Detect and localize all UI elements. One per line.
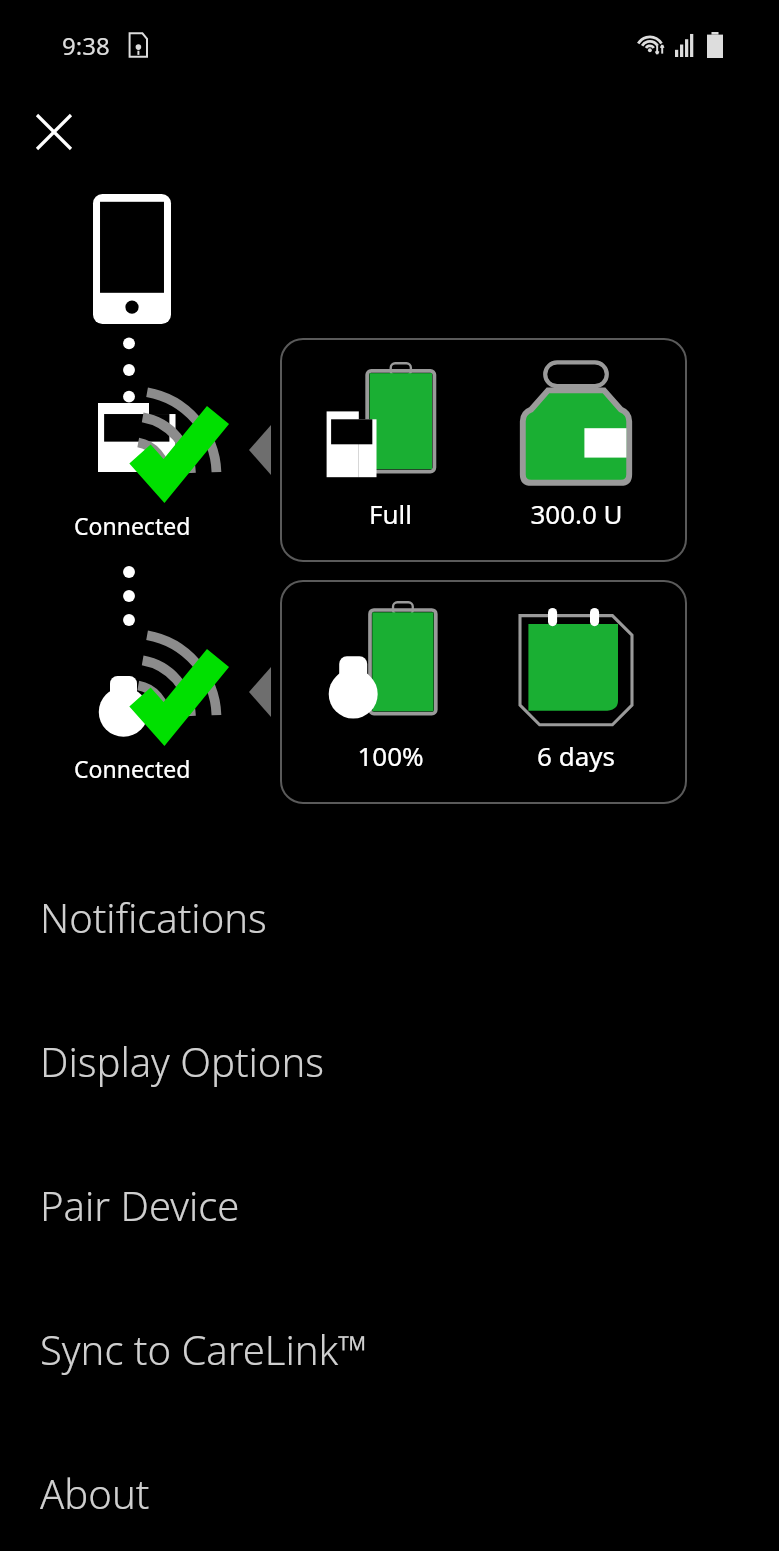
- button[interactable]: Full: [280, 338, 687, 562]
- button[interactable]: Notifications: [0, 845, 779, 989]
- staticText: 300.0 U: [530, 496, 623, 531]
- button[interactable]: Display Options: [0, 989, 779, 1133]
- staticText: Full: [369, 496, 412, 531]
- staticText: 6 days: [537, 738, 615, 773]
- staticText: Display Options: [40, 1034, 324, 1088]
- staticText: Connected: [74, 753, 191, 784]
- staticText: Connected: [74, 510, 191, 541]
- button[interactable]: 100%: [280, 580, 687, 804]
- staticText: Notifications: [40, 890, 267, 944]
- staticText: 100%: [357, 738, 424, 773]
- button[interactable]: Sync to CareLink™: [0, 1277, 779, 1421]
- staticText: About: [40, 1466, 150, 1520]
- button[interactable]: About: [0, 1421, 779, 1551]
- staticText: 9:38: [62, 29, 110, 62]
- button[interactable]: Pair Device: [0, 1133, 779, 1277]
- button[interactable]: Close: [22, 100, 86, 164]
- staticText: Sync to CareLink™: [40, 1322, 368, 1376]
- staticText: Pair Device: [40, 1178, 240, 1232]
